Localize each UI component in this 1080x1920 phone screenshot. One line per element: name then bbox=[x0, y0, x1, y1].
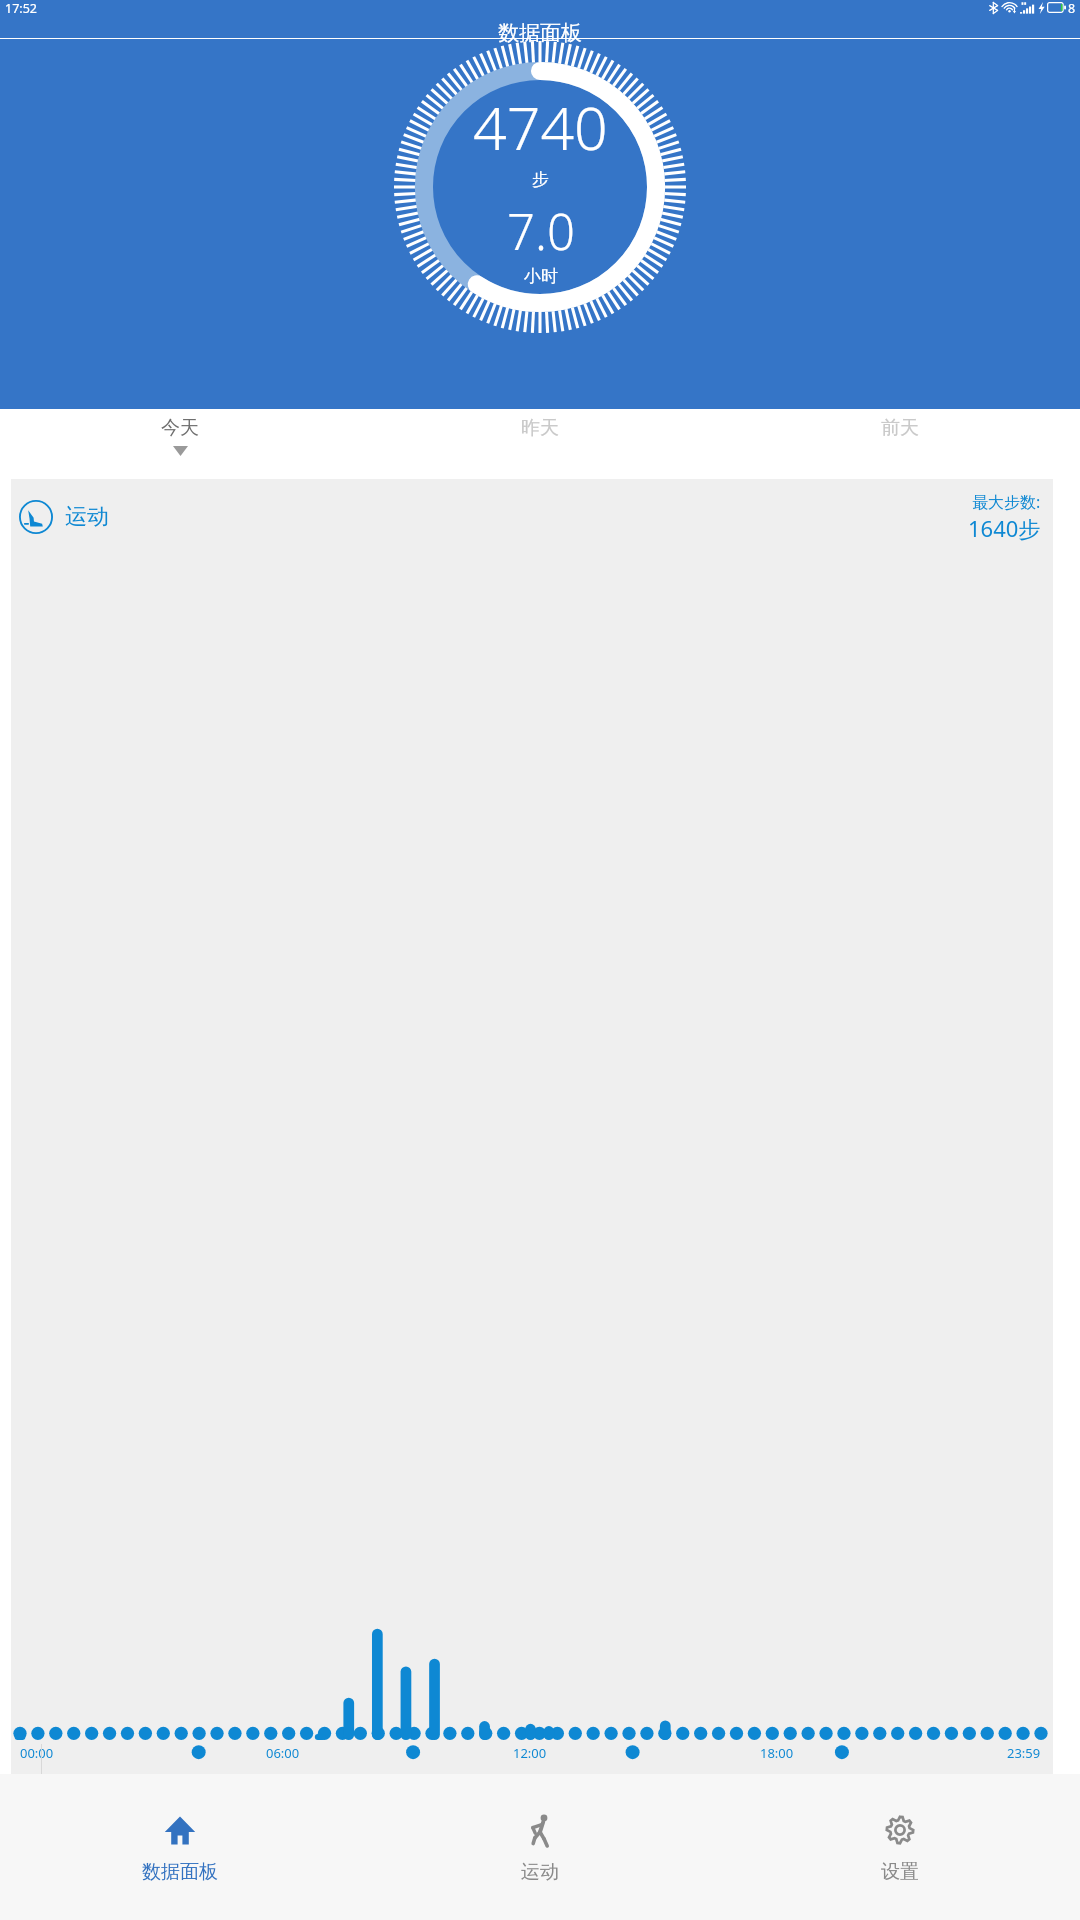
staticText: 昨天 bbox=[521, 416, 559, 440]
staticText: 18:00 bbox=[760, 1744, 794, 1762]
staticText: 23:59 bbox=[1007, 1744, 1041, 1762]
staticText: 17:52 bbox=[5, 0, 37, 15]
staticText: 小时 bbox=[524, 266, 558, 287]
staticText: 最大步数: bbox=[972, 491, 1041, 513]
button[interactable]: 运动 bbox=[360, 1774, 720, 1920]
staticText: 00:00 bbox=[20, 1744, 54, 1762]
staticText: 步 bbox=[532, 169, 549, 190]
staticText: 数据面板 bbox=[498, 20, 582, 46]
staticText: 1640步 bbox=[968, 513, 1041, 543]
staticText: 06:00 bbox=[266, 1744, 300, 1762]
staticText: 数据面板 bbox=[142, 1860, 218, 1884]
staticText: 今天 bbox=[161, 416, 199, 440]
button[interactable]: 今天 bbox=[0, 409, 360, 479]
staticText: 4740 bbox=[473, 87, 608, 167]
staticText: 设置 bbox=[881, 1860, 919, 1884]
staticText: 8 bbox=[1068, 0, 1076, 15]
staticText: 12:00 bbox=[513, 1744, 547, 1762]
staticText: 运动 bbox=[65, 503, 109, 531]
button[interactable]: 设置 bbox=[720, 1774, 1080, 1920]
button[interactable]: 前天 bbox=[720, 409, 1080, 479]
staticText: 运动 bbox=[521, 1860, 559, 1884]
button[interactable]: 昨天 bbox=[360, 409, 720, 479]
button[interactable]: 数据面板 bbox=[0, 1774, 360, 1920]
staticText: 前天 bbox=[881, 416, 919, 440]
button[interactable]: 运动 bbox=[11, 479, 1053, 1774]
staticText: 7.0 bbox=[507, 198, 575, 265]
